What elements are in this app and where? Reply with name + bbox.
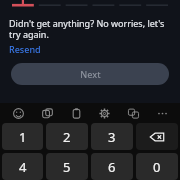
button[interactable]: 5 [46, 153, 88, 180]
button[interactable]: Backspace [136, 123, 178, 150]
staticText: Didn't get anything? No worries, let's t… [9, 17, 171, 40]
button[interactable]: Translate [125, 105, 141, 121]
button[interactable]: More options [154, 105, 170, 121]
staticText: 5 [63, 158, 71, 176]
button[interactable]: 0 [136, 153, 178, 180]
button[interactable]: Settings [96, 105, 112, 121]
button[interactable]: 3 [91, 123, 133, 150]
button[interactable]: Clipboard [68, 105, 84, 121]
staticText: 2 [63, 128, 71, 146]
button[interactable]: Resend [9, 43, 41, 55]
staticText: 1 [19, 128, 27, 146]
staticText: 6 [108, 158, 116, 176]
staticText: Resend [9, 43, 41, 55]
button[interactable]: Stickers [39, 105, 55, 121]
button[interactable]: 2 [46, 123, 88, 150]
staticText: 3 [108, 128, 116, 146]
button[interactable]: 4 [2, 153, 43, 180]
button[interactable]: 6 [91, 153, 133, 180]
button[interactable]: Next [11, 63, 169, 85]
staticText: Next [80, 68, 101, 80]
staticText: 4 [19, 158, 27, 176]
staticText: 0 [153, 158, 161, 176]
button[interactable]: Emoji [10, 105, 26, 121]
button[interactable]: 1 [2, 123, 43, 150]
